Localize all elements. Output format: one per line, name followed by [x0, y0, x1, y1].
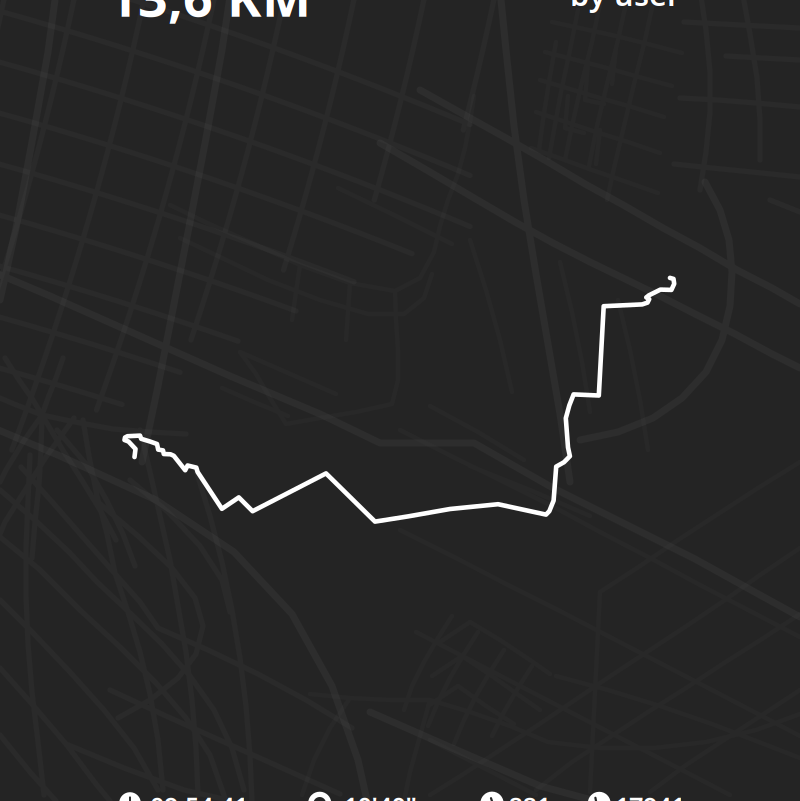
staticText: 13,6 KM: [108, 0, 311, 31]
staticText: 17941: [615, 789, 685, 801]
staticText: 09:54:41: [150, 789, 248, 801]
staticText: 10'40": [343, 789, 416, 801]
staticText: 881: [508, 789, 550, 801]
staticText: by user: [570, 0, 680, 14]
